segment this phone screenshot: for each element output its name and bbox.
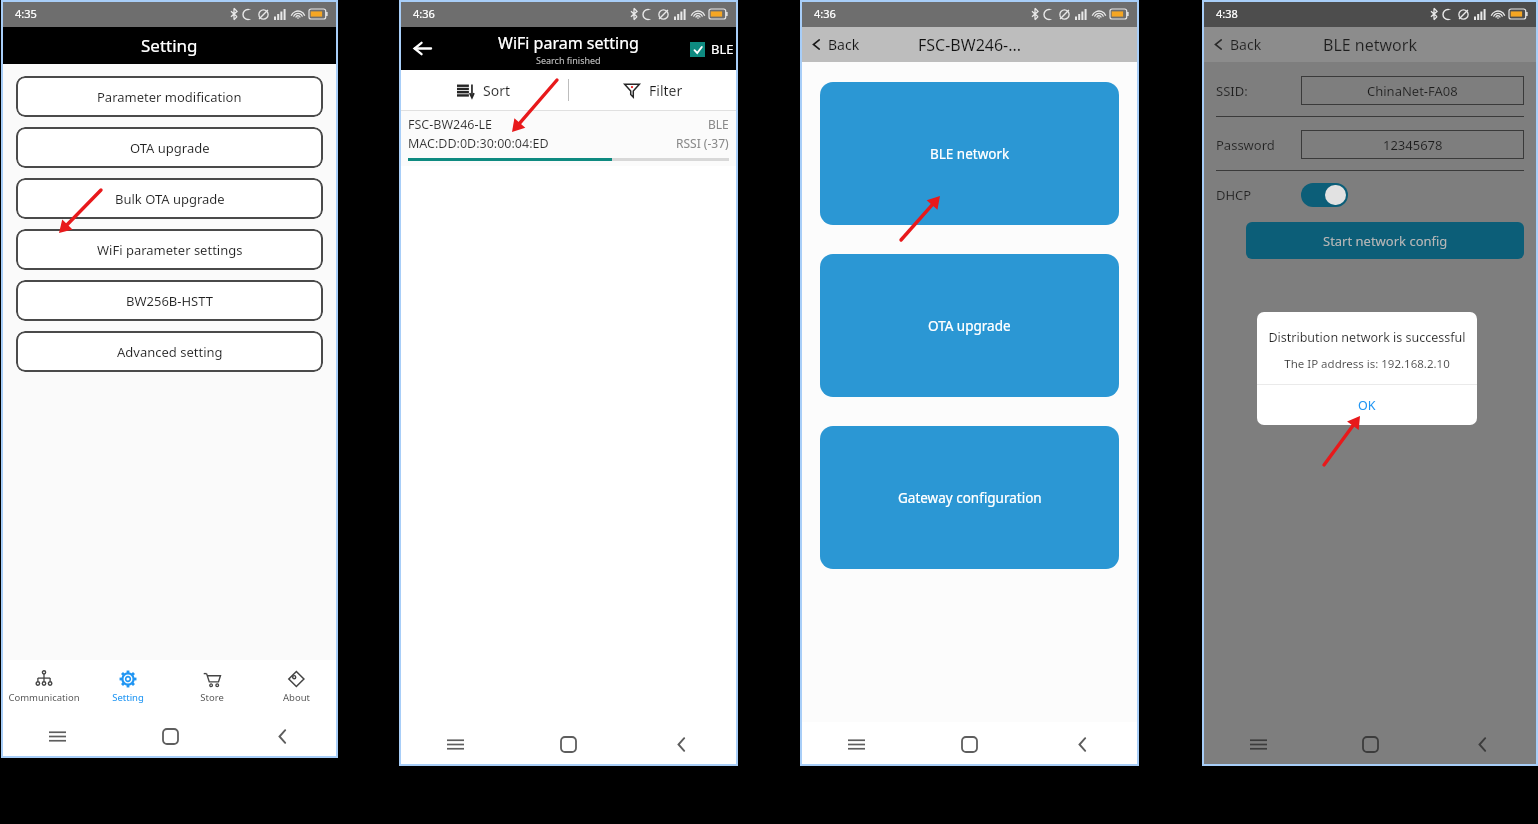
staticText: OK bbox=[1358, 397, 1376, 414]
button[interactable]: DHCP toggle bbox=[1301, 183, 1348, 207]
button[interactable]: OTA upgrade bbox=[820, 254, 1119, 397]
staticText: WiFi param setting bbox=[498, 32, 639, 54]
button[interactable]: 12345678 bbox=[1301, 130, 1524, 159]
button[interactable]: Home bbox=[512, 722, 625, 766]
staticText: Back bbox=[828, 35, 860, 54]
staticText: Filter bbox=[649, 81, 683, 100]
button[interactable]: Back bbox=[1026, 722, 1139, 766]
button[interactable]: WiFi parameter settings bbox=[16, 229, 323, 270]
staticText: Store bbox=[200, 691, 224, 704]
button[interactable]: Parameter modification bbox=[16, 76, 323, 117]
button[interactable]: Home bbox=[114, 714, 226, 758]
staticText: Bulk OTA upgrade bbox=[115, 190, 225, 208]
staticText: BLE bbox=[708, 116, 729, 132]
staticText: WiFi parameter settings bbox=[97, 241, 243, 259]
staticText: BW256B-HSTT bbox=[126, 292, 213, 310]
button[interactable]: OTA upgrade bbox=[16, 127, 323, 168]
button[interactable]: Gateway configuration bbox=[820, 426, 1119, 569]
staticText: Setting bbox=[141, 34, 198, 57]
staticText: OTA upgrade bbox=[928, 317, 1011, 335]
staticText: Advanced setting bbox=[117, 343, 223, 361]
button[interactable]: Home bbox=[913, 722, 1026, 766]
staticText: BLE network bbox=[930, 145, 1010, 163]
button[interactable]: Sort bbox=[399, 70, 568, 110]
staticText: Start network config bbox=[1323, 232, 1448, 250]
staticText: DHCP bbox=[1216, 186, 1301, 204]
staticText: Sort bbox=[483, 81, 510, 100]
button[interactable]: FSC-BW246-LE bbox=[399, 111, 738, 166]
staticText: OTA upgrade bbox=[130, 139, 210, 157]
staticText: BLE network bbox=[1323, 34, 1417, 56]
staticText: Distribution network is successful bbox=[1261, 329, 1473, 346]
staticText: 4:38 bbox=[1216, 6, 1238, 21]
staticText: About bbox=[283, 691, 310, 704]
staticText: BLE bbox=[711, 40, 734, 58]
staticText: Back bbox=[1230, 35, 1262, 54]
staticText: Communication bbox=[8, 691, 80, 704]
button[interactable]: Recent apps bbox=[800, 722, 913, 766]
button[interactable]: BW256B-HSTT bbox=[16, 280, 323, 321]
staticText: 4:36 bbox=[413, 6, 435, 21]
staticText: RSSI (-37) bbox=[676, 135, 729, 151]
staticText: SSID: bbox=[1216, 82, 1301, 100]
staticText: 12345678 bbox=[1383, 136, 1443, 154]
staticText: Setting bbox=[112, 691, 144, 704]
staticText: Parameter modification bbox=[97, 88, 242, 106]
button[interactable]: Back bbox=[625, 722, 738, 766]
button[interactable]: Filter bbox=[569, 70, 738, 110]
button[interactable]: Recent apps bbox=[1, 714, 114, 758]
staticText: The IP address is: 192.168.2.10 bbox=[1257, 356, 1477, 372]
button[interactable]: About bbox=[254, 660, 338, 714]
button[interactable]: Store bbox=[170, 660, 254, 714]
button[interactable]: Back bbox=[1426, 722, 1538, 766]
button[interactable]: Start network config bbox=[1246, 222, 1524, 259]
button[interactable]: Advanced setting bbox=[16, 331, 323, 372]
button[interactable]: BLE bbox=[687, 32, 737, 66]
staticText: ChinaNet-FA08 bbox=[1367, 82, 1458, 100]
staticText: 4:36 bbox=[814, 6, 836, 21]
button[interactable]: Recent apps bbox=[1202, 722, 1314, 766]
staticText: FSC-BW246-LE bbox=[408, 116, 493, 133]
button[interactable]: Bulk OTA upgrade bbox=[16, 178, 323, 219]
button[interactable]: Back bbox=[399, 27, 445, 70]
button[interactable]: BLE network bbox=[820, 82, 1119, 225]
button[interactable]: Back bbox=[800, 27, 871, 62]
staticText: Password bbox=[1216, 136, 1301, 154]
staticText: Gateway configuration bbox=[898, 489, 1042, 507]
button[interactable]: Recent apps bbox=[399, 722, 512, 766]
staticText: Search finished bbox=[536, 54, 601, 66]
button[interactable]: Back bbox=[1202, 27, 1273, 62]
staticText: FSC-BW246-... bbox=[918, 34, 1022, 56]
staticText: 4:35 bbox=[15, 6, 37, 21]
button[interactable]: Communication bbox=[1, 660, 86, 714]
button[interactable]: Back bbox=[226, 714, 338, 758]
button[interactable]: Home bbox=[1314, 722, 1426, 766]
staticText: MAC:DD:0D:30:00:04:ED bbox=[408, 135, 549, 152]
button[interactable]: Setting bbox=[86, 660, 170, 714]
button[interactable]: ChinaNet-FA08 bbox=[1301, 76, 1524, 105]
button[interactable]: OK bbox=[1257, 385, 1477, 425]
